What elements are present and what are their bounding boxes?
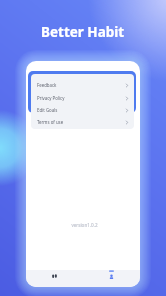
staticText: Privacy Policy xyxy=(37,95,65,101)
staticText: Edit Goals xyxy=(37,107,58,113)
staticText: Feedback xyxy=(37,82,57,88)
button[interactable]: Edit Goals xyxy=(31,104,134,116)
staticText: version1.0.2 xyxy=(71,222,98,228)
button[interactable]: Terms of use xyxy=(31,116,134,128)
button[interactable]: Feedback xyxy=(31,79,134,91)
staticText: Better Habit xyxy=(41,23,125,41)
button[interactable]: Habits xyxy=(26,270,83,287)
button[interactable]: Profile xyxy=(83,270,140,287)
staticText: Terms of use xyxy=(37,119,64,125)
button[interactable]: Privacy Policy xyxy=(31,92,134,104)
